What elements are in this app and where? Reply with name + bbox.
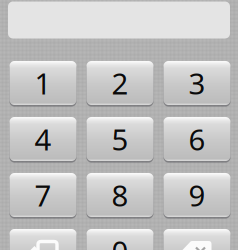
staticText: 7 [34, 175, 51, 214]
button[interactable]: 3 [163, 61, 230, 105]
button[interactable]: 9 [163, 173, 230, 217]
button[interactable]: 8 [86, 173, 153, 217]
staticText: 6 [188, 119, 205, 158]
button[interactable]: 5 [86, 117, 153, 161]
button[interactable]: 6 [163, 117, 230, 161]
staticText: 2 [111, 63, 128, 102]
button[interactable]: 1 [9, 61, 76, 105]
staticText: 4 [34, 119, 51, 158]
button[interactable]: 0 [86, 229, 153, 250]
staticText: 1 [34, 63, 51, 102]
staticText: 3 [188, 63, 205, 102]
button[interactable]: 2 [86, 61, 153, 105]
staticText: 0 [111, 231, 128, 250]
button[interactable]: 4 [9, 117, 76, 161]
button[interactable]: 7 [9, 173, 76, 217]
staticText: 9 [188, 175, 205, 214]
button[interactable]: Delete [163, 229, 230, 250]
button[interactable]: Hide keyboard [9, 229, 76, 250]
staticText: 5 [111, 119, 128, 158]
staticText: 8 [111, 175, 128, 214]
